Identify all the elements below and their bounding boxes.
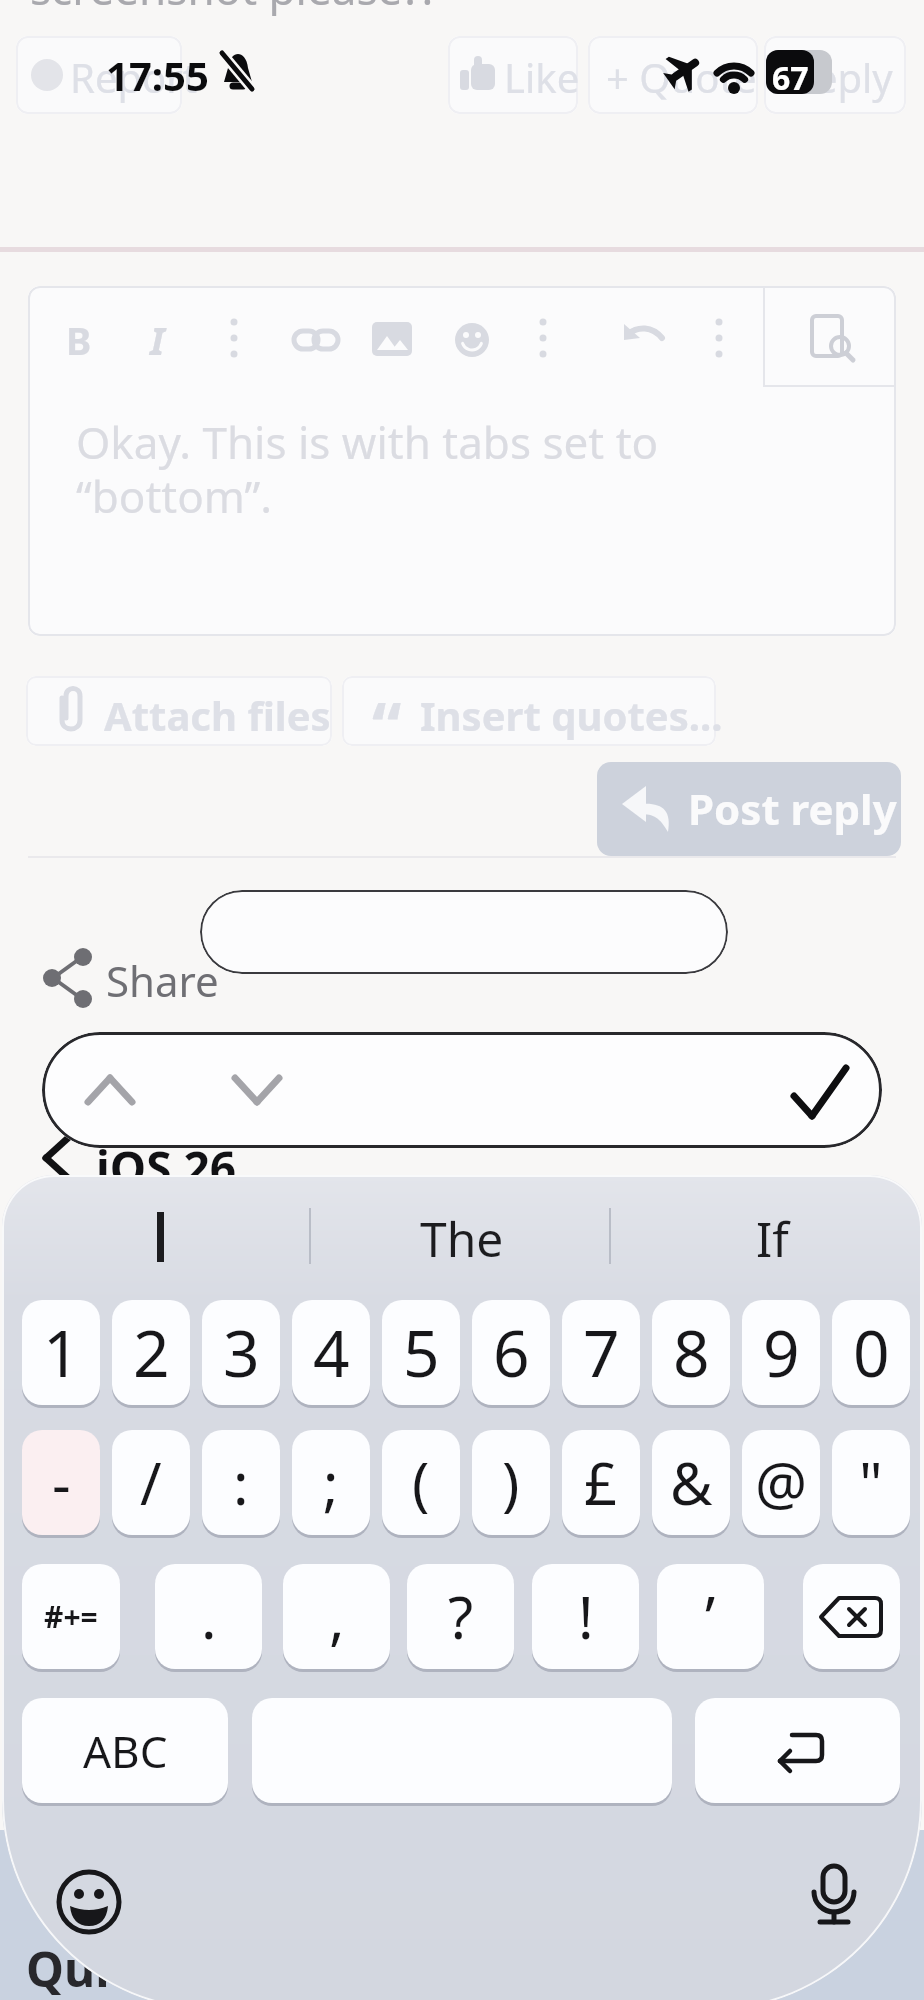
staticText: Report <box>70 50 198 104</box>
staticText: I <box>150 314 165 366</box>
button[interactable]: 1 <box>22 1300 100 1405</box>
staticText: iOS 26 <box>96 1136 237 1199</box>
staticText: ? <box>448 1577 474 1656</box>
staticText: 4 <box>313 1309 350 1396</box>
staticText: 3 <box>223 1309 260 1396</box>
button[interactable]: 5 <box>382 1300 460 1405</box>
button[interactable]: 2 <box>112 1300 190 1405</box>
button[interactable] <box>695 1698 900 1803</box>
button[interactable]: #+= <box>22 1564 120 1669</box>
button[interactable]: ? <box>407 1564 514 1669</box>
staticText: screenshot please?! <box>30 0 434 18</box>
button[interactable] <box>806 1864 862 1940</box>
button[interactable]: 7 <box>562 1300 640 1405</box>
button[interactable]: / <box>112 1430 190 1535</box>
button[interactable] <box>588 36 758 114</box>
staticText: + Quote <box>606 50 757 104</box>
button[interactable]: . <box>155 1564 262 1669</box>
staticText: 17:55 <box>106 48 209 102</box>
button[interactable]: If <box>640 1205 904 1271</box>
button[interactable]: - <box>22 1430 100 1535</box>
staticText: 9 <box>763 1309 800 1396</box>
staticText: ’ <box>705 1577 716 1656</box>
staticText: £ <box>584 1443 618 1522</box>
button[interactable]: 6 <box>472 1300 550 1405</box>
staticText: “ <box>372 680 402 770</box>
staticText: Reply <box>790 50 893 104</box>
button[interactable]: 9 <box>742 1300 820 1405</box>
staticText: ABC <box>83 1721 168 1781</box>
button[interactable]: ( <box>382 1430 460 1535</box>
staticText: If <box>756 1206 789 1271</box>
staticText: 1 <box>43 1309 80 1396</box>
staticText: " <box>859 1443 883 1522</box>
button[interactable]: The <box>330 1205 594 1271</box>
button[interactable] <box>55 1868 123 1936</box>
staticText: Share <box>106 952 219 1009</box>
button[interactable] <box>40 945 220 1007</box>
staticText: - <box>52 1443 71 1522</box>
button[interactable] <box>16 36 182 114</box>
button[interactable]: " <box>832 1430 910 1535</box>
staticText: 6 <box>493 1309 530 1396</box>
staticText: ! <box>578 1577 594 1656</box>
button[interactable]: , <box>283 1564 390 1669</box>
staticText: Qui <box>26 1936 110 2000</box>
staticText: 0 <box>853 1309 890 1396</box>
staticText: Attach files <box>104 688 331 742</box>
staticText: 67 <box>772 56 809 100</box>
staticText: Like <box>504 50 580 104</box>
button[interactable] <box>803 1564 900 1669</box>
button[interactable]: £ <box>562 1430 640 1535</box>
button[interactable] <box>342 676 716 746</box>
button[interactable]: : <box>202 1430 280 1535</box>
staticText: ( <box>412 1443 430 1522</box>
button[interactable] <box>42 1032 882 1148</box>
staticText: #+= <box>44 1596 98 1637</box>
staticText: 2 <box>133 1309 170 1396</box>
button[interactable]: & <box>652 1430 730 1535</box>
button[interactable]: @ <box>742 1430 820 1535</box>
staticText: ) <box>502 1443 520 1522</box>
staticText: Okay. This is with tabs set to <box>76 412 659 472</box>
button[interactable] <box>26 676 332 746</box>
staticText: B <box>66 314 92 366</box>
button[interactable] <box>764 36 906 114</box>
button[interactable]: 3 <box>202 1300 280 1405</box>
staticText: 8 <box>673 1309 710 1396</box>
staticText: & <box>670 1443 713 1522</box>
button[interactable]: ABC <box>22 1698 228 1803</box>
button[interactable]: ! <box>532 1564 639 1669</box>
button[interactable]: ) <box>472 1430 550 1535</box>
button[interactable]: 0 <box>832 1300 910 1405</box>
staticText: Post reply <box>688 780 897 837</box>
button[interactable]: 4 <box>292 1300 370 1405</box>
staticText: Insert quotes... <box>420 688 723 742</box>
staticText: “bottom”. <box>76 466 273 526</box>
button[interactable]: ’ <box>657 1564 764 1669</box>
button[interactable] <box>252 1698 672 1803</box>
staticText: , <box>329 1577 345 1656</box>
staticText: 7 <box>583 1309 620 1396</box>
button[interactable]: 8 <box>652 1300 730 1405</box>
button[interactable] <box>448 36 578 114</box>
staticText: ; <box>323 1443 339 1522</box>
button[interactable]: ; <box>292 1430 370 1535</box>
staticText: / <box>140 1443 162 1522</box>
staticText: The <box>420 1206 504 1271</box>
button[interactable] <box>597 762 901 856</box>
staticText: @ <box>755 1443 808 1522</box>
staticText: : <box>233 1443 249 1522</box>
staticText: . <box>201 1577 217 1656</box>
staticText: 5 <box>403 1309 440 1396</box>
